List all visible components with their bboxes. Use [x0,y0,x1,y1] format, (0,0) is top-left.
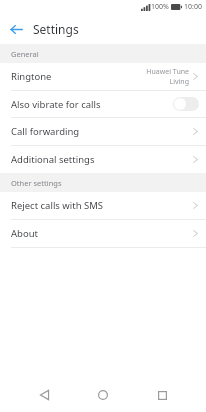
button[interactable]: Back [29,380,59,410]
staticText: Other settings [11,178,62,188]
button[interactable]: Also vibrate for calls toggle [173,97,199,111]
button[interactable]: Ringtone [0,63,206,90]
button[interactable]: Reject calls with SMS [0,192,206,219]
staticText: Reject calls with SMS [11,199,104,212]
button[interactable]: Home [88,380,118,410]
button[interactable]: Also vibrate for calls [0,91,206,117]
staticText: Living [169,77,189,87]
staticText: Ringtone [11,70,52,83]
button[interactable]: Call forwarding [0,118,206,145]
button[interactable]: Additional settings [0,146,206,173]
button[interactable]: Back [5,18,27,40]
button[interactable]: About [0,220,206,247]
staticText: Call forwarding [11,125,80,138]
staticText: 100% [151,2,169,12]
staticText: General [11,49,39,59]
staticText: Huawei Tune [146,67,189,77]
staticText: Settings [33,21,79,37]
staticText: About [11,227,38,240]
staticText: Also vibrate for calls [11,98,101,111]
staticText: 10:00 [184,2,202,12]
staticText: Additional settings [11,153,95,166]
button[interactable]: Recent apps [147,380,177,410]
